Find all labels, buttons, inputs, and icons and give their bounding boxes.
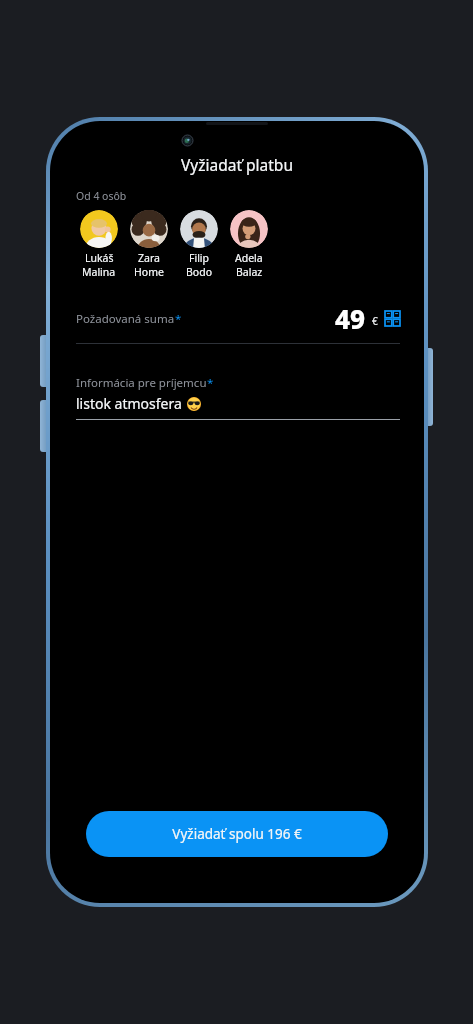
staticText: Vyžiadať platbu xyxy=(181,154,293,175)
staticText: Informácia pre príjemcu xyxy=(76,375,207,391)
staticText: Balaz xyxy=(236,265,263,279)
button[interactable]: Informácia pre príjemcu xyxy=(76,375,400,413)
button[interactable]: Filip xyxy=(174,210,224,279)
button[interactable]: Open keypad xyxy=(385,311,400,326)
staticText: listok atmosfera xyxy=(76,394,182,413)
staticText: Od 4 osôb xyxy=(76,189,127,203)
button[interactable]: Zara xyxy=(124,210,174,279)
button[interactable]: Adela xyxy=(224,210,274,279)
other: Volume up xyxy=(40,335,48,387)
staticText: Bodo xyxy=(186,265,212,279)
staticText: € xyxy=(372,314,378,328)
staticText: 49 xyxy=(335,301,366,336)
button[interactable]: Vyžiadať spolu 196 € xyxy=(86,811,388,857)
staticText: Adela xyxy=(235,251,263,265)
staticText: Zara xyxy=(138,251,160,265)
staticText: * xyxy=(175,311,182,327)
staticText: Vyžiadať spolu 196 € xyxy=(172,825,302,843)
staticText: Požadovaná suma xyxy=(76,311,175,327)
staticText: Malina xyxy=(82,265,116,279)
staticText: Lukáš xyxy=(85,251,114,265)
staticText: * xyxy=(207,375,214,391)
staticText: Home xyxy=(134,265,164,279)
button[interactable]: Požadovaná suma xyxy=(76,301,400,336)
other: Volume down xyxy=(40,400,48,452)
other: Power xyxy=(425,348,433,426)
button[interactable]: Lukáš xyxy=(74,210,124,279)
staticText: Filip xyxy=(189,251,210,265)
